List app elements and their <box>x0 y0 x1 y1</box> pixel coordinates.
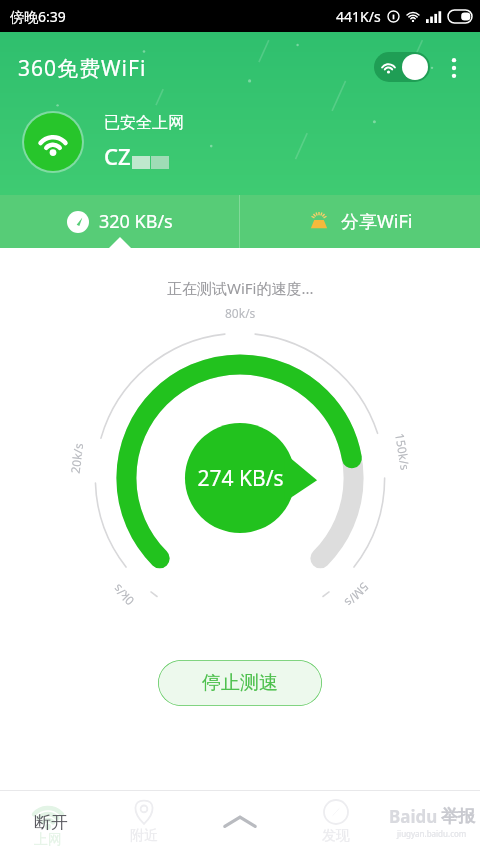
staticText: 停止测速 <box>202 671 278 695</box>
staticText: 附近 <box>130 827 158 845</box>
staticText: 274 KB/s <box>197 464 284 493</box>
staticText: 80k/s <box>225 305 256 321</box>
staticText: 分享WiFi <box>341 209 413 234</box>
staticText: 上网 <box>34 831 62 849</box>
staticText: Baidu <box>389 805 438 828</box>
staticText: 20k/s <box>67 442 86 474</box>
button[interactable]: 停止测速 <box>158 660 322 706</box>
button[interactable]: 发现 <box>288 791 384 853</box>
button[interactable]: 分享WiFi <box>240 195 480 248</box>
button[interactable]: More options <box>442 54 466 82</box>
button[interactable]: WiFi toggle <box>374 52 430 82</box>
staticText: 320 KB/s <box>99 209 173 234</box>
button[interactable]: 附近 <box>96 791 192 853</box>
staticText: 441K/s <box>336 7 381 26</box>
button[interactable]: 320 KB/s <box>0 195 239 248</box>
staticText: 5M/s <box>341 579 372 610</box>
staticText: 正在测试WiFi的速度... <box>167 278 314 298</box>
button[interactable]: Expand <box>192 791 288 853</box>
staticText: 150k/s <box>392 432 414 472</box>
staticText: 360免费WiFi <box>18 54 147 83</box>
staticText: jiugyan.baidu.com <box>397 828 467 839</box>
staticText: 举报 <box>441 806 475 827</box>
staticText: 傍晚6:39 <box>10 7 66 26</box>
button[interactable]: 上网 <box>0 791 96 853</box>
staticText: 0k/s <box>109 581 137 609</box>
staticText: 发现 <box>322 827 350 845</box>
staticText: CZ <box>104 141 131 171</box>
staticText: 已安全上网 <box>104 113 184 133</box>
staticText: 断开 <box>34 812 68 833</box>
